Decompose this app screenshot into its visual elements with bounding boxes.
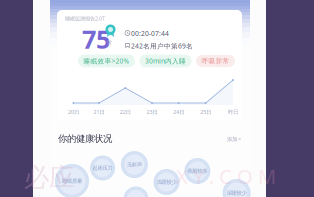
staticText: 睡眠质量	[62, 178, 82, 184]
staticText: 睡眠效率>20%	[83, 56, 129, 65]
staticText: 昨日	[228, 109, 238, 115]
button[interactable]: 呼吸异常	[196, 55, 235, 67]
button[interactable]	[123, 186, 148, 197]
staticText: X Y . C O M	[176, 163, 276, 190]
staticText: 75	[82, 22, 110, 56]
staticText: 呼吸异常	[201, 57, 229, 65]
staticText: 25日	[200, 108, 211, 116]
staticText: 你的健康状况	[58, 133, 112, 144]
button[interactable]: 无鼾声	[121, 151, 148, 178]
staticText: 无鼾声	[127, 161, 142, 168]
button[interactable]: 起床压力	[90, 155, 115, 180]
staticText: 添加 >	[227, 135, 241, 143]
staticText: 深睡较少	[227, 190, 247, 196]
staticText: 00:20-07:44	[131, 29, 169, 38]
staticText: 30min内入睡	[145, 56, 186, 65]
button[interactable]: 添加 >	[221, 135, 241, 143]
button[interactable]: 睡眠效率>20%	[78, 54, 135, 67]
button[interactable]: 深睡较少	[223, 179, 251, 197]
staticText: 分	[107, 39, 112, 46]
staticText: 22日	[120, 108, 131, 116]
staticText: 23日	[146, 108, 157, 116]
staticText: 24日	[173, 108, 184, 116]
staticText: 浅睡较少	[156, 179, 176, 185]
staticText: 20日	[68, 108, 79, 116]
button[interactable]: 睡眠质量	[55, 164, 89, 197]
staticText: 必应	[24, 162, 74, 193]
button[interactable]: 浅睡较少	[153, 169, 179, 195]
button[interactable]: 夜醒较多	[184, 158, 210, 184]
button[interactable]: 30min内入睡	[139, 54, 191, 67]
staticText: 起床压力	[93, 165, 113, 171]
staticText: 夜醒较多	[187, 168, 207, 174]
staticText: 睡眠监测报告2.0T	[65, 15, 105, 22]
staticText: 21日	[93, 108, 104, 116]
staticText: 242名用户中第69名	[131, 41, 193, 50]
